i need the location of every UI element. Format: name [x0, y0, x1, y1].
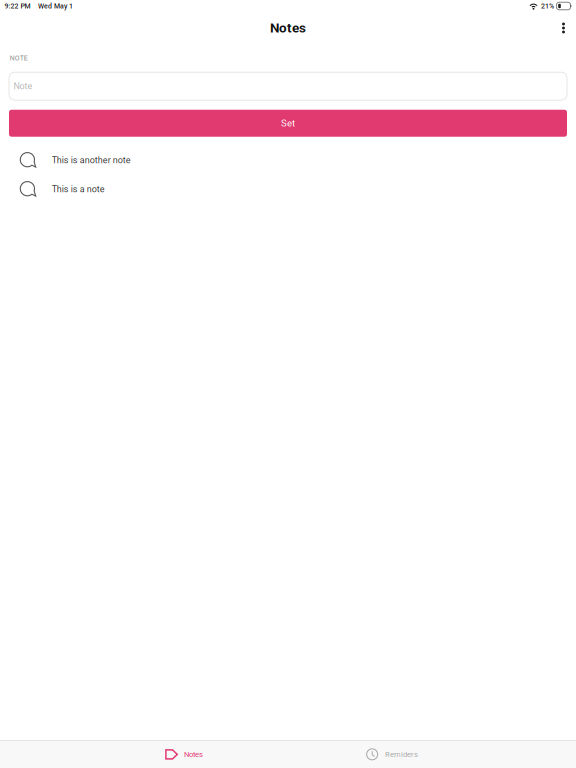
- staticText: Set: [281, 118, 295, 129]
- staticText: Notes: [270, 20, 306, 36]
- button[interactable]: Set: [9, 110, 567, 137]
- button[interactable]: This is another note: [0, 146, 576, 175]
- staticText: Notes: [184, 750, 203, 759]
- staticText: Remiders: [385, 750, 418, 759]
- button[interactable]: Notes: [80, 741, 288, 768]
- staticText: This is a note: [52, 184, 105, 194]
- staticText: Note: [14, 81, 33, 91]
- button[interactable]: More options: [553, 12, 573, 44]
- staticText: This is another note: [52, 155, 131, 165]
- staticText: 9:22 PM: [4, 2, 30, 10]
- button[interactable]: Remiders: [288, 741, 496, 768]
- button[interactable]: This is a note: [0, 175, 576, 204]
- staticText: Wed May 1: [38, 2, 73, 10]
- staticText: 21%: [541, 2, 554, 10]
- staticText: NOTE: [10, 54, 28, 62]
